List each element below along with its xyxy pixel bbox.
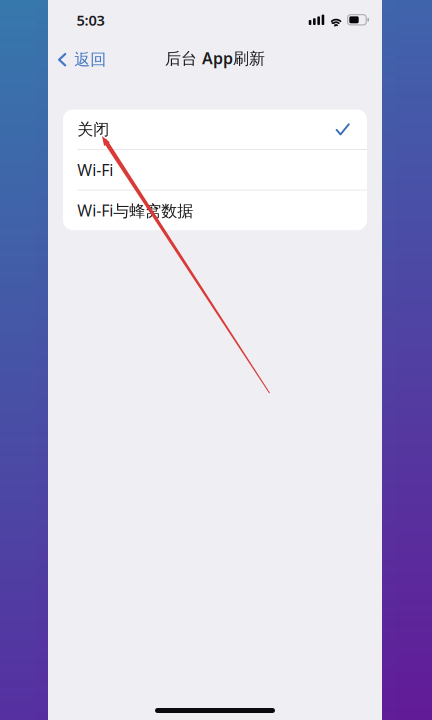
staticText: 5:03 <box>76 10 104 30</box>
staticText: Wi-Fi <box>77 159 113 180</box>
button[interactable]: Wi-Fi <box>63 150 367 190</box>
button[interactable]: 关闭 <box>63 109 367 149</box>
button[interactable]: Wi-Fi与蜂窝数据 <box>63 190 367 230</box>
staticText: Wi-Fi与蜂窝数据 <box>77 200 193 221</box>
staticText: 后台 App刷新 <box>165 47 265 69</box>
button[interactable]: 返回 <box>48 40 119 76</box>
staticText: 返回 <box>74 50 106 70</box>
staticText: 关闭 <box>77 119 109 139</box>
